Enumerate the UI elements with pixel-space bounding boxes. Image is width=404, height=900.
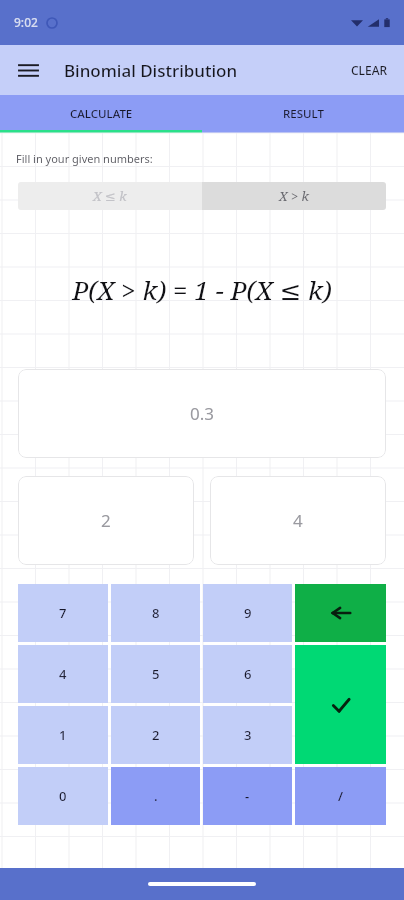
button[interactable]: 3 xyxy=(203,706,292,764)
staticText: 1 xyxy=(59,726,67,744)
button[interactable]: - xyxy=(203,767,292,825)
button[interactable]: 0 xyxy=(18,767,108,825)
staticText: 9:02 xyxy=(14,14,38,30)
staticText: 0.3 xyxy=(190,402,215,425)
button[interactable]: 1 xyxy=(18,706,108,764)
staticText: . xyxy=(154,787,158,805)
staticText: 2 xyxy=(152,726,160,744)
staticText: X > k xyxy=(279,187,310,205)
staticText: 0 xyxy=(59,787,67,805)
button[interactable]: 4 xyxy=(210,476,386,565)
button[interactable]: 8 xyxy=(111,584,200,642)
button[interactable]: 2 xyxy=(111,706,200,764)
staticText: RESULT xyxy=(283,106,324,122)
button[interactable]: X > k xyxy=(202,182,386,210)
button[interactable]: 7 xyxy=(18,584,108,642)
staticText: / xyxy=(338,787,344,805)
staticText: CLEAR xyxy=(351,62,388,78)
staticText: 9 xyxy=(244,604,252,622)
button[interactable]: Open navigation menu xyxy=(7,49,49,91)
staticText: 2 xyxy=(101,509,111,532)
button[interactable]: Confirm xyxy=(295,645,386,764)
staticText: P(X > k) = 1 − P(X ≤ k) xyxy=(72,272,332,307)
staticText: 5 xyxy=(152,665,160,683)
button[interactable]: 5 xyxy=(111,645,200,703)
staticText: Binomial Distribution xyxy=(64,59,238,82)
button[interactable]: / xyxy=(295,767,386,825)
staticText: 7 xyxy=(59,604,67,622)
button[interactable]: CALCULATE xyxy=(0,95,202,133)
staticText: X ≤ k xyxy=(93,187,127,205)
staticText: CALCULATE xyxy=(70,106,133,122)
button[interactable]: 9 xyxy=(203,584,292,642)
staticText: 6 xyxy=(244,665,252,683)
staticText: 4 xyxy=(293,509,303,532)
staticText: Fill in your given numbers: xyxy=(16,151,153,166)
button[interactable]: 2 xyxy=(18,476,194,565)
staticText: - xyxy=(245,787,250,805)
button[interactable]: X ≤ k xyxy=(18,182,202,210)
button[interactable]: Backspace xyxy=(295,584,386,642)
staticText: 4 xyxy=(59,665,67,683)
button[interactable]: 4 xyxy=(18,645,108,703)
staticText: 8 xyxy=(152,604,160,622)
button[interactable]: 6 xyxy=(203,645,292,703)
button[interactable]: CLEAR xyxy=(341,54,398,86)
staticText: 3 xyxy=(244,726,252,744)
button[interactable]: RESULT xyxy=(202,95,404,133)
button[interactable]: 0.3 xyxy=(18,369,386,458)
